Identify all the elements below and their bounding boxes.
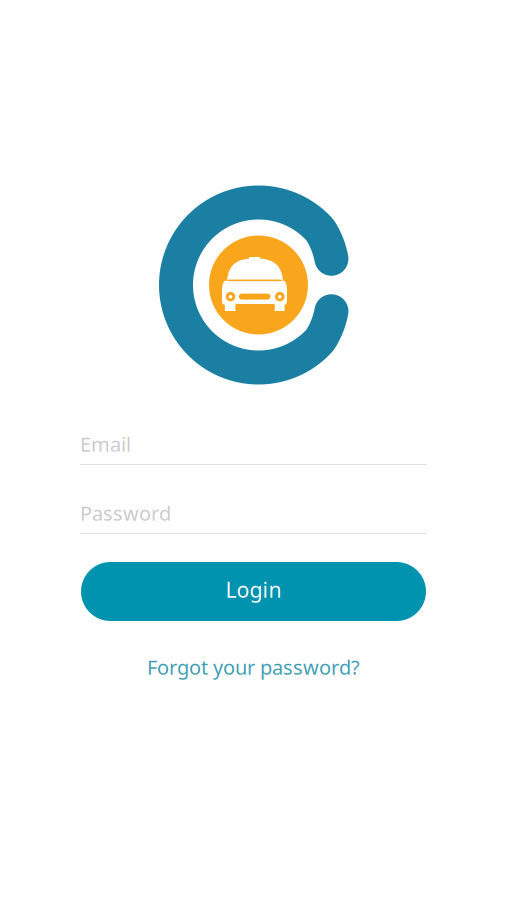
button[interactable]: Forgot your password? bbox=[147, 652, 360, 682]
staticText: Password bbox=[80, 500, 171, 526]
staticText: Forgot your password? bbox=[147, 654, 360, 680]
staticText: Email bbox=[80, 431, 131, 457]
button[interactable]: Login bbox=[81, 562, 426, 621]
staticText: Login bbox=[225, 575, 281, 604]
